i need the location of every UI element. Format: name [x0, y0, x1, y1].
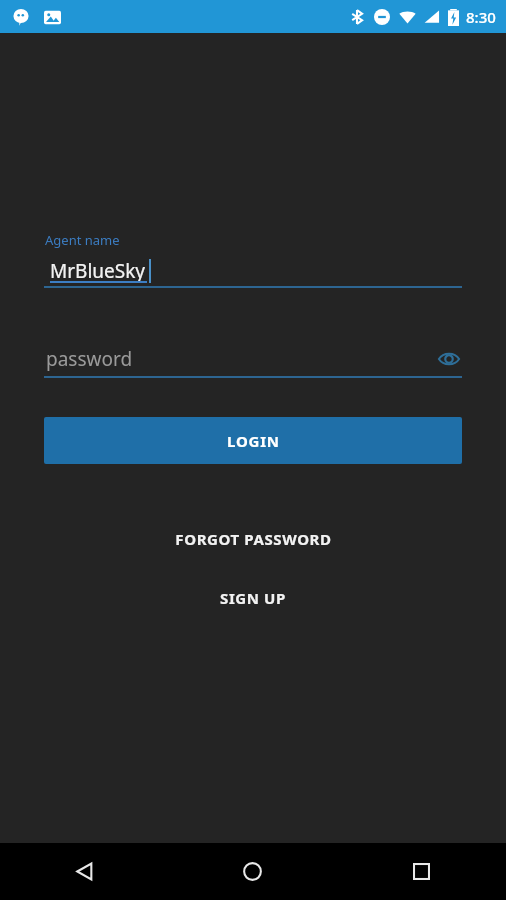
button[interactable]: Recents: [337, 843, 506, 900]
button[interactable]: SIGN UP: [0, 581, 506, 615]
button[interactable]: FORGOT PASSWORD: [0, 522, 506, 556]
button[interactable]: LOGIN: [44, 417, 462, 464]
staticText: 8:30: [466, 7, 496, 27]
staticText: SIGN UP: [220, 588, 286, 608]
staticText: MrBlueSky: [50, 258, 146, 284]
button[interactable]: Show password: [436, 346, 462, 372]
button[interactable]: password: [44, 345, 462, 378]
staticText: FORGOT PASSWORD: [175, 529, 332, 549]
button[interactable]: MrBlueSky: [44, 258, 462, 288]
staticText: password: [46, 346, 133, 372]
button[interactable]: Back: [0, 843, 168, 900]
button[interactable]: Home: [168, 843, 337, 900]
staticText: Agent name: [45, 231, 120, 249]
staticText: LOGIN: [227, 431, 280, 451]
